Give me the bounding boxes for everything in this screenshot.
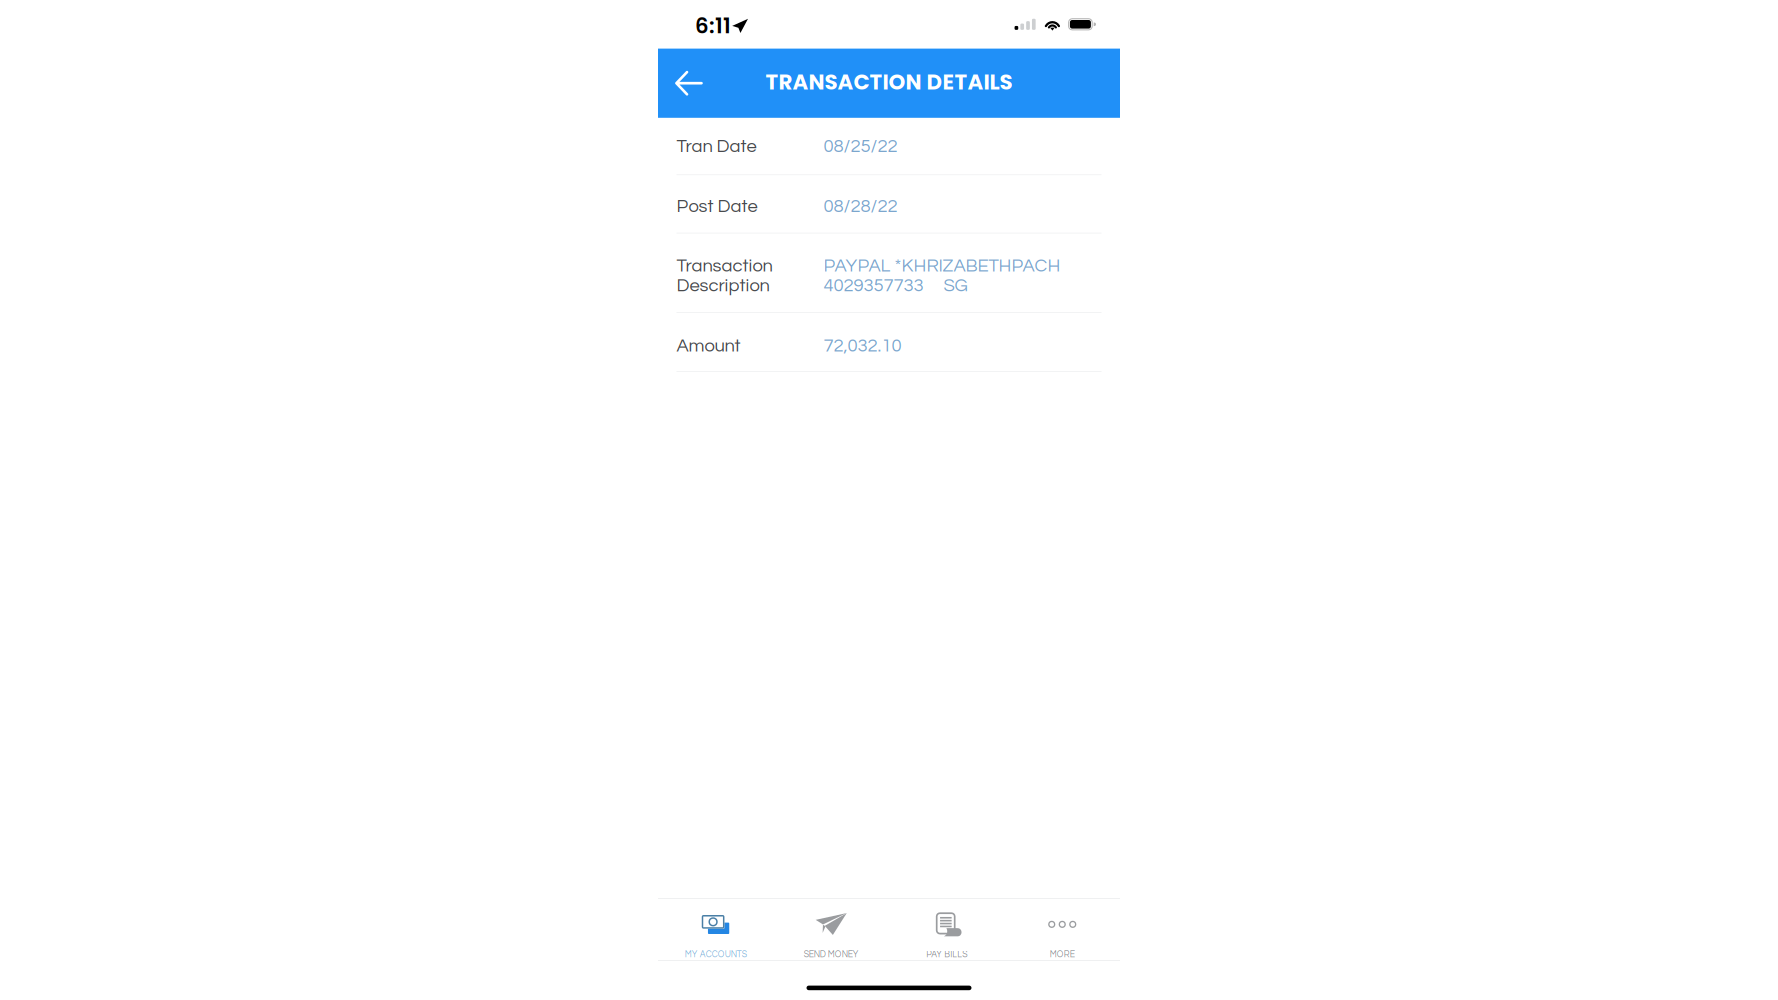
button[interactable]: MORE	[1004, 899, 1120, 960]
staticText: 08/28/22	[823, 197, 897, 216]
button[interactable]: MY ACCOUNTS	[658, 899, 773, 960]
staticText: Transaction	[676, 256, 772, 275]
staticText: MY ACCOUNTS	[685, 950, 747, 959]
staticText: 6:11	[695, 11, 731, 41]
button[interactable]: SEND MONEY	[773, 899, 889, 960]
staticText: PAY BILLS	[926, 950, 967, 959]
staticText: Amount	[676, 336, 740, 355]
staticText: 4029357733 SG	[823, 276, 967, 295]
staticText: 08/25/22	[823, 137, 897, 156]
staticText: PAYPAL *KHRIZABETHPACH	[823, 256, 1060, 275]
staticText: Tran Date	[676, 137, 756, 156]
button[interactable]: Back	[658, 58, 712, 108]
staticText: 72,032.10	[823, 336, 901, 355]
staticText: TRANSACTION DETAILS	[765, 67, 1012, 97]
staticText: SEND MONEY	[804, 950, 859, 959]
button[interactable]: PAY BILLS	[889, 899, 1004, 960]
staticText: Description	[676, 276, 769, 295]
staticText: Post Date	[676, 197, 757, 216]
staticText: MORE	[1050, 950, 1075, 959]
